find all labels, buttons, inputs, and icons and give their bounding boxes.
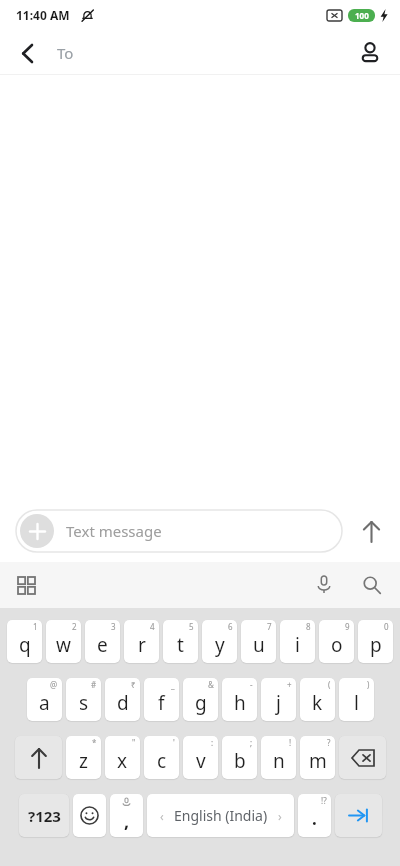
button[interactable]: : <box>183 736 218 779</box>
staticText: t <box>177 632 184 658</box>
staticText: . <box>312 807 317 830</box>
staticText: 100 <box>355 10 369 21</box>
staticText: 5 <box>189 621 194 632</box>
staticText: 4 <box>150 621 155 632</box>
staticText: e <box>97 632 108 658</box>
staticText: l <box>354 690 359 716</box>
staticText: 7 <box>267 621 272 632</box>
staticText: ‹ <box>160 808 164 824</box>
button[interactable]: Add attachment <box>20 514 54 548</box>
button[interactable]: ( <box>300 678 335 721</box>
staticText: ?123 <box>28 806 61 826</box>
button[interactable]: & <box>183 678 218 721</box>
button[interactable]: + <box>261 678 296 721</box>
staticText: 8 <box>306 621 311 632</box>
button[interactable]: Add contact <box>350 33 390 73</box>
staticText: c <box>157 748 167 774</box>
staticText: # <box>91 679 97 690</box>
button[interactable]: ) <box>339 678 374 721</box>
button[interactable]: 3 <box>85 620 120 663</box>
staticText: ? <box>327 737 331 748</box>
button[interactable]: Emoji <box>73 794 106 837</box>
staticText: r <box>138 632 146 658</box>
button[interactable]: Search <box>352 565 392 605</box>
button[interactable]: Comma <box>110 794 143 837</box>
staticText: 6 <box>228 621 233 632</box>
staticText: 11:40 AM <box>16 7 70 23</box>
staticText: z <box>79 748 88 774</box>
button[interactable]: - <box>222 678 257 721</box>
staticText: & <box>208 679 214 690</box>
staticText: 0 <box>384 621 389 632</box>
staticText: ; <box>250 737 253 748</box>
staticText: ! <box>289 737 292 748</box>
button[interactable]: " <box>105 736 140 779</box>
staticText: ) <box>367 679 370 690</box>
button[interactable]: ?123 <box>19 794 69 837</box>
staticText: f <box>158 690 165 716</box>
staticText: ' <box>173 737 175 748</box>
button[interactable]: !? <box>298 794 331 837</box>
staticText: - <box>250 679 253 690</box>
staticText: › <box>278 808 282 824</box>
button[interactable]: Send <box>348 508 394 554</box>
staticText: : <box>211 737 214 748</box>
staticText: 1 <box>33 621 38 632</box>
staticText: To <box>57 43 74 63</box>
button[interactable]: 8 <box>280 620 315 663</box>
staticText: Text message <box>66 521 162 541</box>
staticText: " <box>132 737 136 748</box>
button[interactable]: Back <box>8 33 48 73</box>
staticText: d <box>117 690 129 716</box>
staticText: , <box>124 809 130 834</box>
staticText: s <box>79 690 89 716</box>
staticText: + <box>287 679 292 690</box>
button[interactable]: ! <box>261 736 296 779</box>
staticText: k <box>312 690 323 716</box>
staticText: j <box>276 690 281 716</box>
staticText: ₹ <box>131 679 136 690</box>
staticText: p <box>370 632 382 658</box>
staticText: w <box>56 632 71 658</box>
button[interactable]: ‹ <box>147 794 294 837</box>
staticText: ( <box>328 679 331 690</box>
staticText: !? <box>321 795 327 806</box>
button[interactable]: 4 <box>124 620 159 663</box>
button[interactable]: 0 <box>358 620 393 663</box>
button[interactable]: _ <box>144 678 179 721</box>
button[interactable]: # <box>66 678 101 721</box>
button[interactable]: 7 <box>241 620 276 663</box>
button[interactable]: ' <box>144 736 179 779</box>
button[interactable]: Next field <box>335 794 382 837</box>
staticText: x <box>117 748 128 774</box>
staticText: 3 <box>111 621 116 632</box>
button[interactable]: * <box>66 736 101 779</box>
button[interactable]: Voice input <box>304 565 344 605</box>
staticText: 9 <box>345 621 350 632</box>
button[interactable]: 9 <box>319 620 354 663</box>
button[interactable]: Backspace <box>339 736 386 779</box>
staticText: @ <box>50 679 58 690</box>
staticText: h <box>234 690 246 716</box>
button[interactable]: 5 <box>163 620 198 663</box>
staticText: m <box>309 748 327 774</box>
button[interactable]: @ <box>27 678 62 721</box>
staticText: q <box>19 632 31 658</box>
staticText: y <box>215 632 225 658</box>
button[interactable]: ? <box>300 736 335 779</box>
button[interactable]: Shift <box>15 736 62 779</box>
button[interactable]: Clipboard <box>6 565 46 605</box>
button[interactable]: ₹ <box>105 678 140 721</box>
staticText: _ <box>171 679 175 690</box>
staticText: a <box>39 690 50 716</box>
staticText: u <box>253 632 265 658</box>
staticText: 2 <box>72 621 77 632</box>
button[interactable]: 2 <box>46 620 81 663</box>
staticText: b <box>234 748 246 774</box>
staticText: v <box>196 748 206 774</box>
button[interactable]: 1 <box>7 620 42 663</box>
staticText: English (India) <box>174 806 268 825</box>
button[interactable]: ; <box>222 736 257 779</box>
button[interactable]: 6 <box>202 620 237 663</box>
staticText: n <box>273 748 285 774</box>
